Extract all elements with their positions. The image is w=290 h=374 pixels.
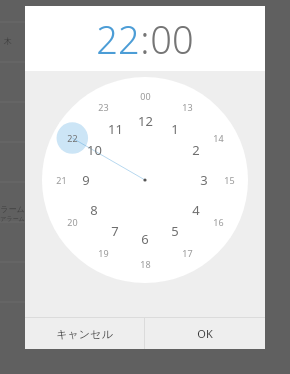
button[interactable]: 20 [62, 213, 82, 231]
staticText: 00 [140, 90, 151, 102]
button[interactable]: Hour 22 [96, 13, 140, 65]
staticText: 22 [67, 132, 78, 144]
button[interactable]: 6 [134, 228, 156, 250]
staticText: 3 [200, 171, 208, 189]
button[interactable]: 17 [177, 244, 197, 262]
staticText: 18 [140, 258, 151, 270]
button[interactable]: 4 [185, 199, 207, 221]
staticText: 20 [67, 216, 78, 228]
staticText: OK [197, 326, 213, 341]
button[interactable]: 7 [104, 220, 126, 242]
button[interactable]: 13 [177, 98, 197, 116]
staticText: 15 [224, 174, 235, 186]
staticText: ラーム [0, 204, 25, 214]
button[interactable]: 11 [104, 118, 126, 140]
button[interactable]: Minute 00 [150, 13, 194, 65]
button[interactable]: 23 [93, 98, 113, 116]
staticText: 16 [213, 216, 224, 228]
staticText: 4 [192, 201, 200, 219]
staticText: アラーム [0, 215, 25, 223]
button[interactable]: 14 [208, 129, 228, 147]
staticText: キャンセル [56, 327, 113, 341]
staticText: 6 [141, 230, 149, 248]
button[interactable]: 21 [51, 171, 71, 189]
staticText: 7 [111, 222, 119, 240]
button[interactable]: 19 [93, 244, 113, 262]
button[interactable]: 10 [83, 139, 105, 161]
staticText: : [140, 13, 150, 65]
staticText: 1 [171, 120, 179, 138]
button[interactable]: キャンセル [25, 318, 144, 349]
staticText: 11 [108, 120, 123, 138]
staticText: 22 [96, 13, 140, 65]
staticText: 21 [56, 174, 67, 186]
button[interactable]: 15 [219, 171, 239, 189]
staticText: 木 [4, 36, 12, 46]
staticText: 8 [90, 201, 98, 219]
button[interactable]: OK [145, 318, 265, 349]
staticText: 13 [182, 101, 193, 113]
button[interactable]: 3 [193, 169, 215, 191]
button[interactable]: 9 [75, 169, 97, 191]
staticText: 12 [138, 112, 153, 130]
staticText: 23 [98, 101, 109, 113]
button[interactable]: Clock face, 22 hours selected [42, 77, 248, 283]
staticText: 00 [150, 13, 194, 65]
button[interactable]: 2 [185, 139, 207, 161]
button[interactable]: 8 [83, 199, 105, 221]
staticText: 17 [182, 247, 193, 259]
staticText: 9 [82, 171, 90, 189]
staticText: 19 [98, 247, 109, 259]
button[interactable]: 00 [135, 87, 155, 105]
button[interactable]: 22 [62, 129, 82, 147]
button[interactable]: 1 [164, 118, 186, 140]
staticText: 2 [192, 141, 200, 159]
button[interactable]: 18 [135, 255, 155, 273]
staticText: 14 [213, 132, 224, 144]
staticText: 5 [171, 222, 179, 240]
staticText: 10 [87, 141, 102, 159]
button[interactable]: 5 [164, 220, 186, 242]
button[interactable]: 16 [208, 213, 228, 231]
button[interactable]: 12 [134, 110, 156, 132]
